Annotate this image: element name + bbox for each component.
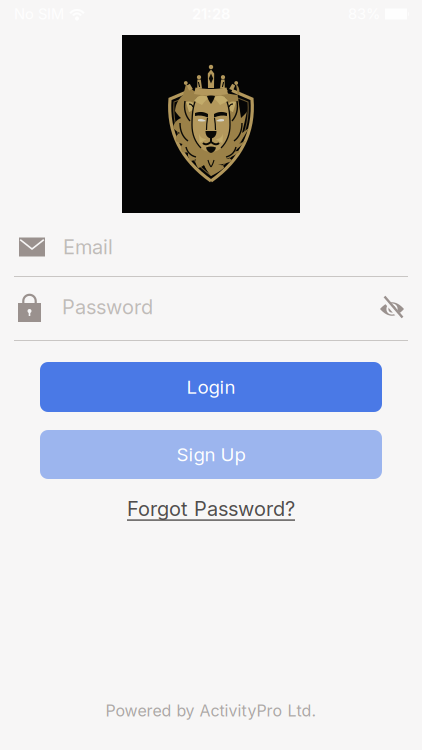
staticText: Sign Up xyxy=(176,443,245,465)
staticText: Login xyxy=(186,376,235,398)
staticText: Email xyxy=(63,235,113,259)
button[interactable]: Password xyxy=(0,292,422,322)
button[interactable]: Forgot Password? xyxy=(127,497,295,521)
button[interactable]: Email xyxy=(0,234,422,260)
button[interactable]: Sign Up xyxy=(40,430,382,479)
staticText: Powered by ActivityPro Ltd. xyxy=(105,701,316,720)
button[interactable]: Show password xyxy=(380,296,404,317)
staticText: Forgot Password? xyxy=(127,497,295,521)
staticText: Password xyxy=(62,295,153,319)
button[interactable]: Login xyxy=(40,362,382,412)
